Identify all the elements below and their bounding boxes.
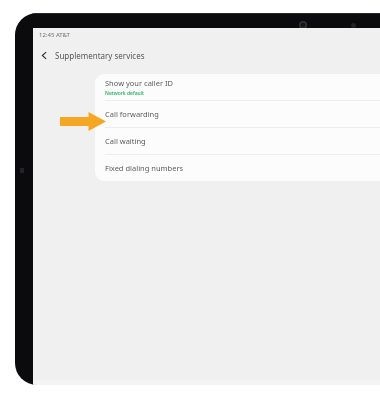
staticText: Supplementary services (55, 50, 145, 61)
staticText: 12:45 AT&T (39, 31, 70, 39)
button[interactable]: Show your caller ID (95, 74, 380, 100)
button[interactable]: Fixed dialing numbers (95, 155, 380, 181)
staticText: Network default (105, 90, 144, 97)
staticText: Show your caller ID (105, 78, 174, 88)
staticText: Call forwarding (105, 109, 159, 119)
staticText: Call waiting (105, 136, 146, 146)
button[interactable]: Back (33, 44, 55, 66)
staticText: Fixed dialing numbers (105, 163, 184, 173)
button[interactable]: Call waiting (95, 128, 380, 154)
button[interactable]: Call forwarding (95, 101, 380, 127)
